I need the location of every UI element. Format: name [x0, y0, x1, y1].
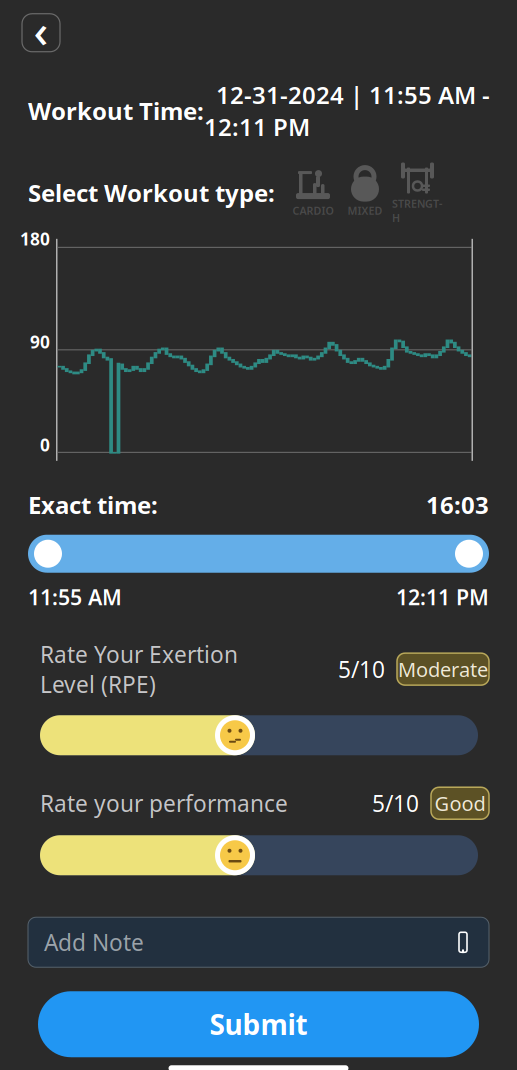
button[interactable]: STRENGTH: [391, 160, 443, 225]
staticText: 5/10: [372, 788, 419, 818]
staticText: STRENGTH: [392, 196, 442, 225]
button[interactable]: Submit: [38, 991, 479, 1057]
button[interactable]: CARDIO: [287, 168, 339, 218]
staticText: 5/10: [338, 654, 385, 684]
staticText: Moderate: [398, 656, 488, 682]
staticText: 12-31-2024 | 11:55 AM - 12:11 PM: [204, 79, 490, 142]
staticText: Add Note: [44, 927, 144, 957]
button[interactable]: MIXED: [339, 168, 391, 218]
button[interactable]: Add Note: [28, 917, 489, 967]
button[interactable]: Back: [22, 14, 60, 52]
staticText: Rate Your Exertion Level (RPE): [40, 639, 238, 699]
staticText: 16:03: [426, 489, 489, 521]
staticText: 0: [40, 433, 50, 456]
staticText: 12:11 PM: [396, 583, 489, 611]
staticText: Rate your performance: [40, 788, 288, 818]
staticText: Submit: [209, 1006, 307, 1043]
staticText: 90: [30, 330, 50, 353]
staticText: ‹: [33, 0, 48, 60]
staticText: MIXED: [347, 204, 382, 218]
staticText: Exact time:: [28, 489, 158, 521]
staticText: 11:55 AM: [28, 583, 122, 611]
staticText: Good: [434, 790, 485, 817]
staticText: Workout Time:: [28, 95, 204, 127]
staticText: CARDIO: [292, 204, 333, 218]
staticText: 180: [20, 227, 50, 250]
staticText: Select Workout type:: [28, 177, 275, 209]
